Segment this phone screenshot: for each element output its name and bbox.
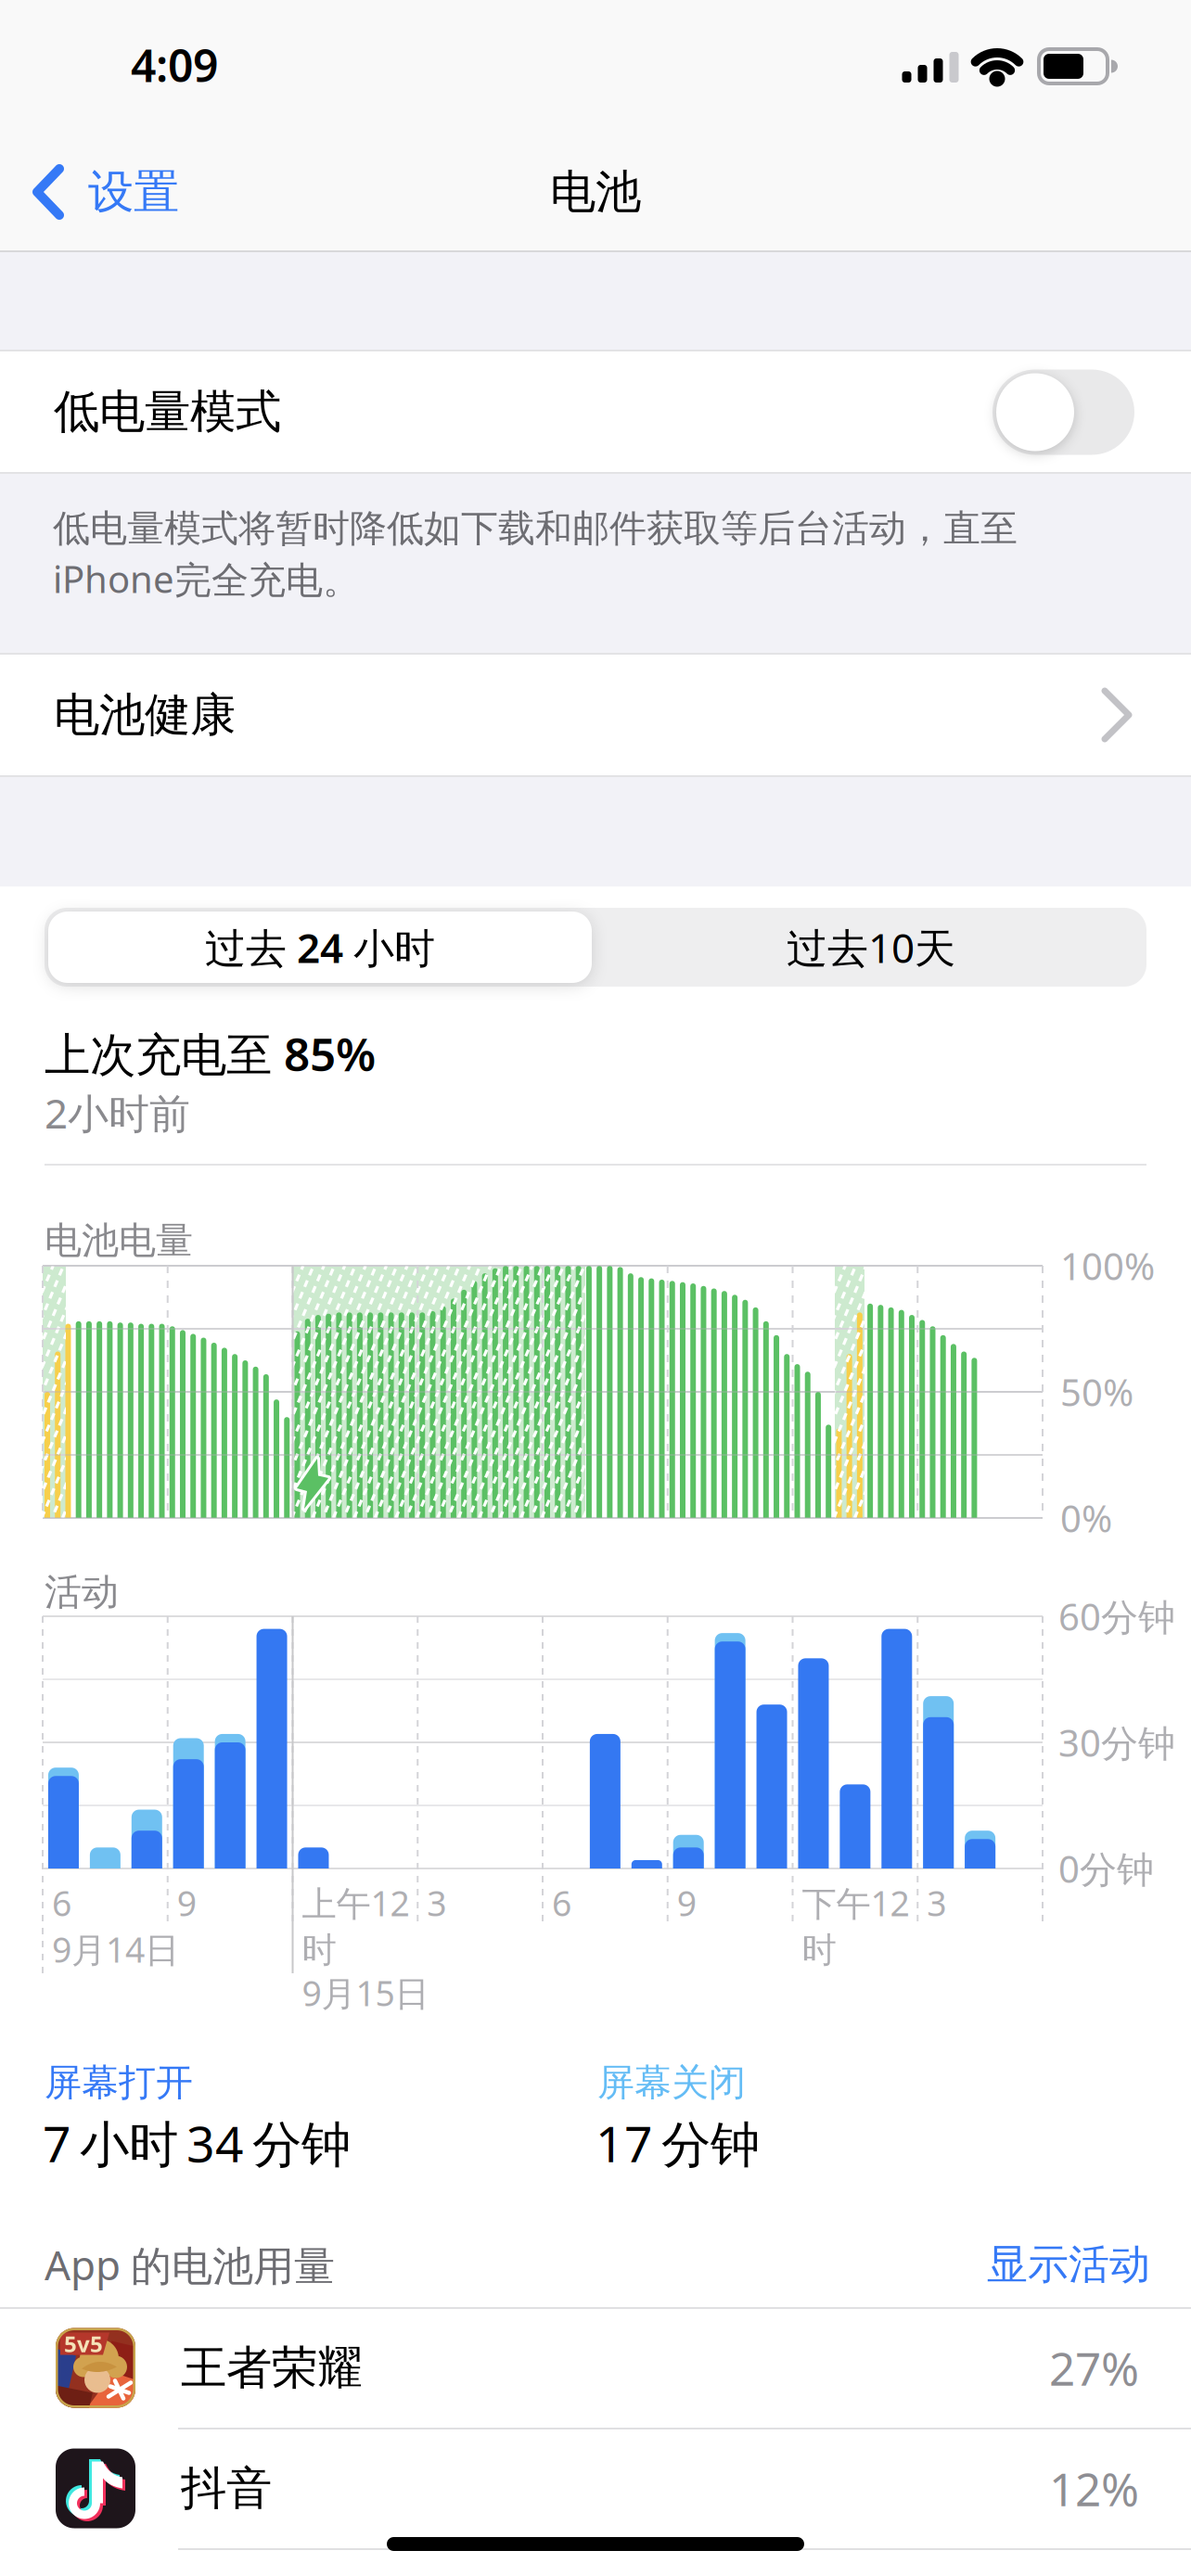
staticText: 2小时前 bbox=[45, 1086, 190, 1140]
staticText: 电池健康 bbox=[54, 687, 236, 743]
staticText: 5v5 bbox=[64, 2329, 103, 2359]
staticText: 12% bbox=[1049, 2458, 1139, 2519]
button[interactable]: 显示活动 bbox=[987, 2227, 1191, 2302]
button[interactable]: 低电量模式 bbox=[983, 365, 1144, 459]
staticText: 50% bbox=[1060, 1367, 1133, 1416]
staticText: 电池 bbox=[550, 164, 641, 220]
staticText: 低电量模式 bbox=[54, 384, 281, 440]
staticText: 时 bbox=[302, 1929, 336, 1971]
button[interactable]: 过去 24 小时 bbox=[45, 908, 595, 987]
staticText: 3 bbox=[927, 1880, 946, 1926]
button[interactable]: 抖音 bbox=[0, 2428, 1191, 2549]
staticText: 100% bbox=[1060, 1241, 1155, 1290]
staticText: 显示活动 bbox=[987, 2239, 1150, 2289]
staticText: 0% bbox=[1060, 1493, 1112, 1543]
staticText: 30分钟 bbox=[1058, 1718, 1175, 1767]
button[interactable]: 返回设置 bbox=[26, 154, 267, 230]
staticText: 屏幕关闭 bbox=[597, 2060, 746, 2105]
staticText: 60分钟 bbox=[1058, 1592, 1175, 1641]
button[interactable]: 5v5 bbox=[0, 2308, 1191, 2428]
button[interactable]: 过去10天 bbox=[595, 908, 1146, 987]
staticText: 设置 bbox=[88, 164, 179, 220]
staticText: 0分钟 bbox=[1058, 1844, 1154, 1893]
staticText: 过去10天 bbox=[787, 920, 955, 974]
staticText: 屏幕打开 bbox=[45, 2060, 193, 2105]
staticText: 17 分钟 bbox=[595, 2110, 760, 2176]
staticText: 6 bbox=[552, 1880, 571, 1926]
staticText: 电池电量 bbox=[45, 1218, 193, 1263]
staticText: 时 bbox=[802, 1929, 836, 1971]
staticText: 低电量模式将暂时降低如下载和邮件获取等后台活动，直至 bbox=[53, 506, 1018, 551]
staticText: 6 bbox=[52, 1880, 71, 1926]
staticText: 抖音 bbox=[181, 2460, 272, 2516]
staticText: 9月14日 bbox=[52, 1926, 179, 1972]
staticText: 9 bbox=[177, 1880, 196, 1926]
staticText: 9 bbox=[677, 1880, 696, 1926]
staticText: App 的电池用量 bbox=[45, 2237, 335, 2292]
button[interactable]: 电池健康 bbox=[0, 654, 1191, 776]
staticText: 7 小时 34 分钟 bbox=[43, 2110, 351, 2176]
staticText: 3 bbox=[427, 1880, 446, 1926]
staticText: 4:09 bbox=[131, 35, 218, 94]
staticText: 上次充电至 85% bbox=[45, 1023, 376, 1084]
staticText: 王者荣耀 bbox=[181, 2340, 363, 2396]
staticText: 上午12 bbox=[302, 1880, 410, 1926]
staticText: 过去 24 小时 bbox=[205, 920, 435, 974]
staticText: 27% bbox=[1049, 2337, 1139, 2398]
staticText: 活动 bbox=[45, 1569, 119, 1615]
staticText: 下午12 bbox=[802, 1880, 909, 1926]
staticText: 9月15日 bbox=[302, 1970, 429, 2016]
staticText: iPhone完全充电。 bbox=[53, 554, 360, 603]
